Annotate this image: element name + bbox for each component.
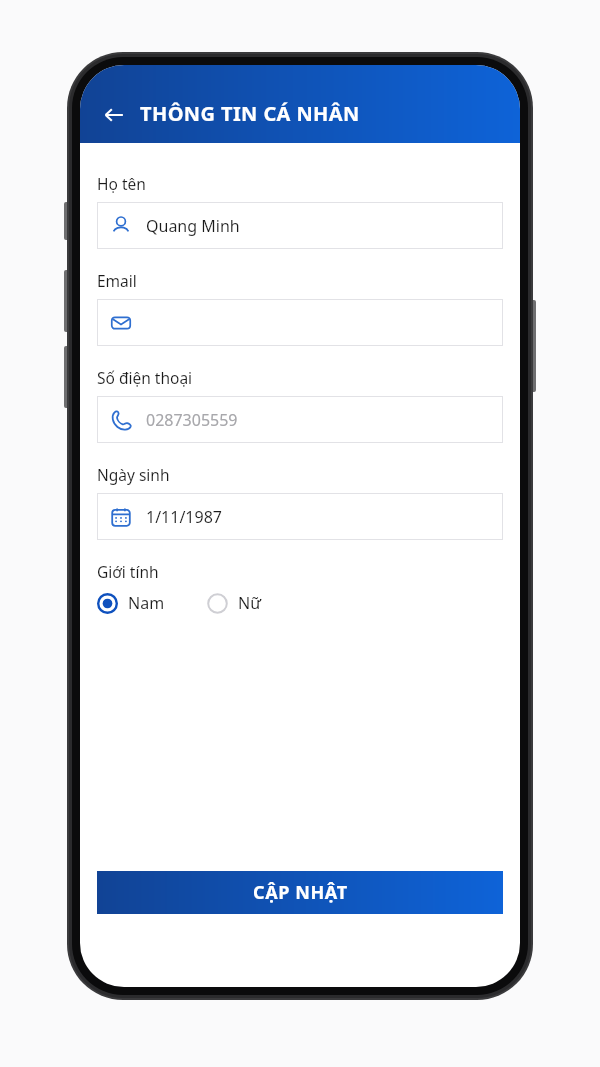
- staticText: Họ tên: [97, 173, 146, 194]
- button[interactable]: 0287305559: [97, 396, 503, 443]
- button[interactable]: 1/11/1987: [97, 493, 503, 540]
- button[interactable]: Back: [94, 95, 134, 135]
- staticText: CẬP NHẬT: [253, 880, 348, 905]
- staticText: Quang Minh: [146, 215, 240, 237]
- button[interactable]: Quang Minh: [97, 202, 503, 249]
- staticText: Email: [97, 270, 137, 291]
- button[interactable]: [97, 299, 503, 346]
- button[interactable]: CẬP NHẬT: [97, 871, 503, 914]
- staticText: Nữ: [238, 592, 261, 614]
- button[interactable]: Nam: [97, 588, 165, 618]
- staticText: 0287305559: [146, 409, 238, 431]
- staticText: Nam: [128, 592, 165, 614]
- staticText: 1/11/1987: [146, 506, 222, 528]
- button[interactable]: Nữ: [207, 588, 261, 618]
- staticText: Số điện thoại: [97, 367, 193, 388]
- staticText: THÔNG TIN CÁ NHÂN: [140, 100, 360, 127]
- staticText: Giới tính: [97, 561, 159, 582]
- staticText: Ngày sinh: [97, 464, 170, 485]
